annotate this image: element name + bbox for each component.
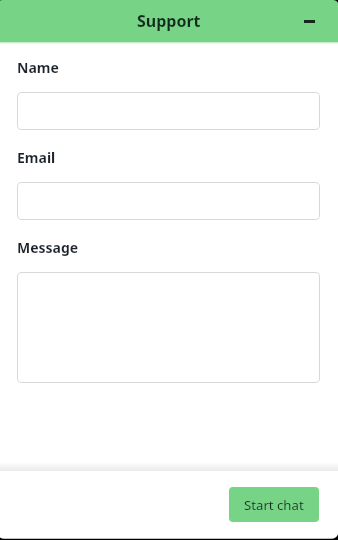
staticText: Email xyxy=(17,148,56,167)
staticText: Name xyxy=(17,58,59,77)
button[interactable] xyxy=(17,92,320,130)
staticText: Start chat xyxy=(244,496,304,514)
button[interactable]: Minimize xyxy=(293,5,325,37)
staticText: Message xyxy=(17,238,79,257)
button[interactable] xyxy=(17,182,320,220)
button[interactable]: Start chat xyxy=(229,487,319,522)
button[interactable] xyxy=(17,272,320,383)
staticText: Support xyxy=(137,10,201,32)
